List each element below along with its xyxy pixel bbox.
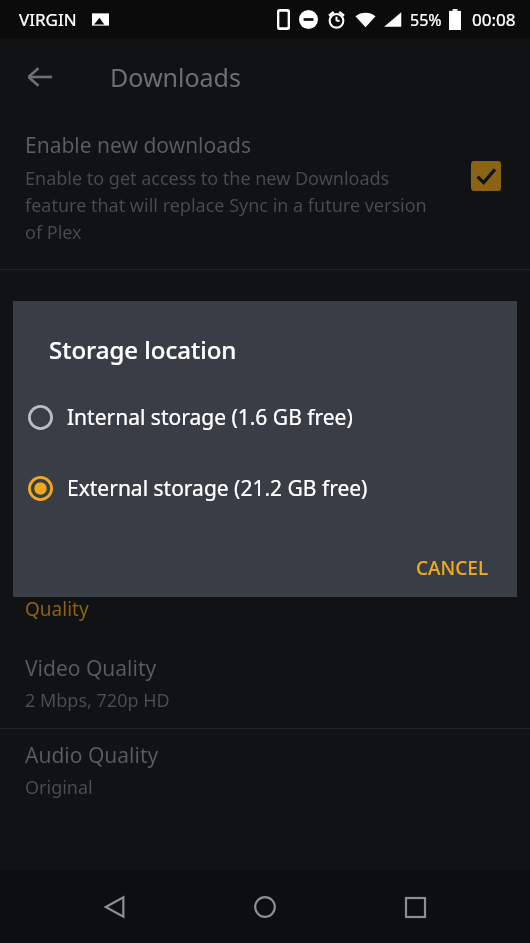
button[interactable]: Audio Quality bbox=[0, 729, 530, 815]
staticText: Storage location bbox=[49, 333, 237, 366]
staticText: Quality bbox=[25, 596, 89, 622]
button[interactable]: Recent apps bbox=[380, 872, 450, 942]
button[interactable]: Internal storage (1.6 GB free) bbox=[13, 389, 517, 445]
button[interactable]: Video Quality bbox=[0, 642, 530, 728]
button[interactable]: CANCEL bbox=[402, 545, 503, 591]
staticText: 00:08 bbox=[472, 8, 516, 31]
staticText: 55% bbox=[410, 9, 442, 31]
button[interactable]: External storage (21.2 GB free) bbox=[13, 460, 517, 516]
staticText: Audio Quality bbox=[25, 741, 159, 770]
staticText: Downloads bbox=[110, 60, 241, 94]
button[interactable]: Home bbox=[230, 872, 300, 942]
staticText: Internal storage (1.6 GB free) bbox=[67, 403, 353, 432]
staticText: Enable to get access to the new Download… bbox=[25, 166, 432, 244]
staticText: 2 Mbps, 720p HD bbox=[25, 688, 170, 713]
staticText: Enable new downloads bbox=[25, 131, 252, 160]
staticText: CANCEL bbox=[416, 555, 489, 581]
staticText: External storage (21.2 GB free) bbox=[67, 474, 368, 503]
staticText: VIRGIN bbox=[19, 8, 77, 31]
staticText: Original bbox=[25, 775, 93, 800]
button[interactable]: Enable new downloads bbox=[0, 116, 530, 269]
button[interactable]: Back bbox=[80, 872, 150, 942]
button[interactable]: Back bbox=[16, 53, 64, 101]
staticText: Video Quality bbox=[25, 654, 157, 683]
